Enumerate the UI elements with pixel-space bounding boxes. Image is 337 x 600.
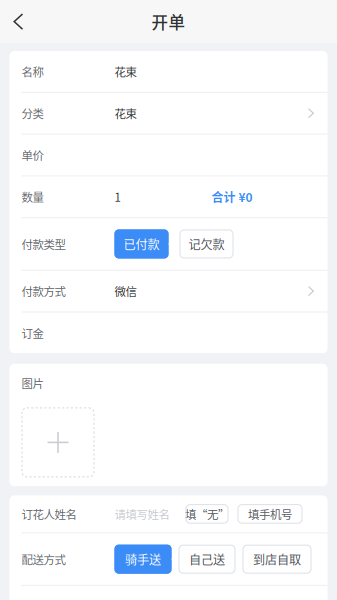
staticText: 到店自取: [253, 550, 301, 568]
staticText: 花束: [114, 63, 136, 80]
button[interactable]: 分类: [9, 93, 327, 134]
button[interactable]: 自己送: [178, 545, 235, 574]
staticText: 记欠款: [188, 235, 224, 253]
staticText: 付款类型: [21, 236, 65, 252]
staticText: 订金: [21, 325, 43, 341]
button[interactable]: 返回: [0, 0, 40, 43]
staticText: 名称: [21, 63, 43, 80]
button[interactable]: 记欠款: [179, 229, 233, 258]
button[interactable]: 已付款: [114, 229, 168, 258]
staticText: 合计 ¥0: [211, 188, 252, 205]
button[interactable]: 填“无”: [185, 504, 228, 524]
staticText: 开单: [151, 9, 185, 33]
staticText: 骑手送: [125, 550, 161, 568]
staticText: 订花人姓名: [21, 506, 76, 522]
staticText: 填“无”: [185, 506, 229, 522]
staticText: 已付款: [123, 235, 159, 253]
button[interactable]: 付款方式: [9, 271, 327, 311]
staticText: 付款方式: [21, 283, 65, 299]
staticText: 填手机号: [248, 506, 292, 522]
staticText: 自己送: [189, 550, 225, 568]
button[interactable]: 骑手送: [114, 545, 171, 574]
button[interactable]: 添加图片: [21, 407, 94, 477]
staticText: 花束: [114, 105, 136, 121]
staticText: 1: [114, 188, 120, 205]
staticText: 单价: [21, 147, 43, 163]
staticText: 数量: [21, 188, 43, 205]
staticText: 请填写姓名: [114, 506, 169, 522]
button[interactable]: 到店自取: [242, 545, 311, 574]
staticText: 图片: [21, 375, 43, 391]
staticText: 配送方式: [21, 551, 65, 567]
button[interactable]: 填手机号: [237, 504, 302, 524]
staticText: 分类: [21, 105, 43, 121]
staticText: 微信: [114, 283, 136, 299]
